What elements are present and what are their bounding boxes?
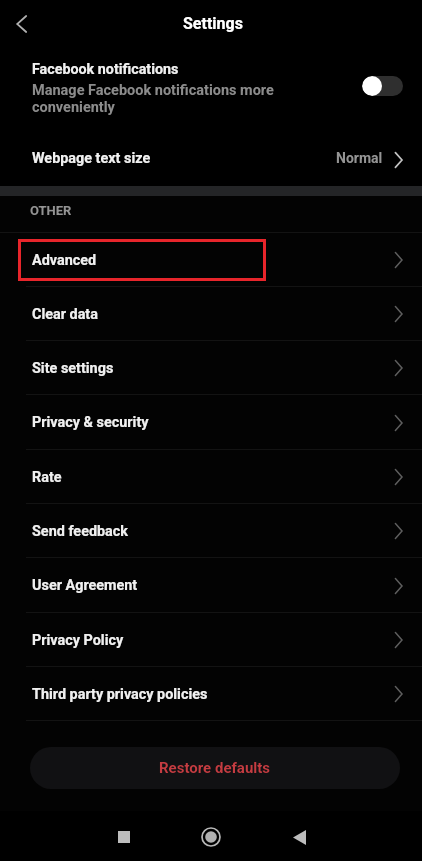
button[interactable]: Facebook notifications toggle bbox=[362, 76, 403, 96]
staticText: Advanced bbox=[32, 252, 390, 269]
button[interactable]: Send feedback bbox=[0, 504, 422, 558]
button[interactable]: Advanced bbox=[0, 233, 422, 287]
button[interactable]: Rate bbox=[0, 450, 422, 504]
button[interactable]: Privacy & security bbox=[0, 395, 422, 450]
staticText: Rate bbox=[32, 469, 390, 486]
button[interactable]: User Agreement bbox=[0, 558, 422, 613]
staticText: Privacy Policy bbox=[32, 632, 390, 649]
staticText: Manage Facebook notifications more conve… bbox=[32, 82, 280, 116]
staticText: Restore defaults bbox=[159, 759, 271, 777]
staticText: User Agreement bbox=[32, 577, 390, 594]
button[interactable]: Back bbox=[0, 2, 43, 45]
staticText: Site settings bbox=[32, 360, 390, 377]
staticText: OTHER bbox=[30, 203, 72, 218]
staticText: Privacy & security bbox=[32, 414, 390, 431]
button[interactable]: Home bbox=[184, 811, 238, 861]
button[interactable]: Restore defaults bbox=[30, 747, 400, 789]
button[interactable]: Privacy Policy bbox=[0, 613, 422, 667]
staticText: Normal bbox=[336, 150, 383, 166]
staticText: Webpage text size bbox=[32, 150, 336, 167]
button[interactable]: Facebook notifications bbox=[0, 46, 422, 130]
staticText: Clear data bbox=[32, 306, 390, 323]
button[interactable]: Recents bbox=[96, 811, 150, 861]
staticText: Third party privacy policies bbox=[32, 686, 390, 703]
button[interactable]: Third party privacy policies bbox=[0, 667, 422, 721]
button[interactable]: Site settings bbox=[0, 341, 422, 395]
button[interactable]: Webpage text size bbox=[0, 130, 422, 186]
staticText: Facebook notifications bbox=[32, 61, 179, 78]
button[interactable]: Clear data bbox=[0, 287, 422, 341]
staticText: Settings bbox=[183, 14, 243, 33]
button[interactable]: Back bbox=[272, 811, 326, 861]
staticText: Send feedback bbox=[32, 523, 390, 540]
